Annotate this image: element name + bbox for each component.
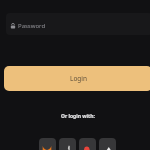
button[interactable]: Sign in with Google bbox=[79, 138, 96, 150]
button[interactable]: Sign in with Firefox bbox=[39, 138, 56, 150]
button[interactable]: Sign in with Apple bbox=[59, 138, 76, 150]
button[interactable]: Login bbox=[4, 66, 150, 91]
staticText: Login bbox=[70, 74, 88, 83]
staticText: Password bbox=[18, 22, 46, 30]
button[interactable]: Sign in with Twitter bbox=[99, 138, 116, 150]
staticText: Or login with: bbox=[61, 113, 95, 120]
button[interactable]: Password bbox=[6, 13, 150, 35]
